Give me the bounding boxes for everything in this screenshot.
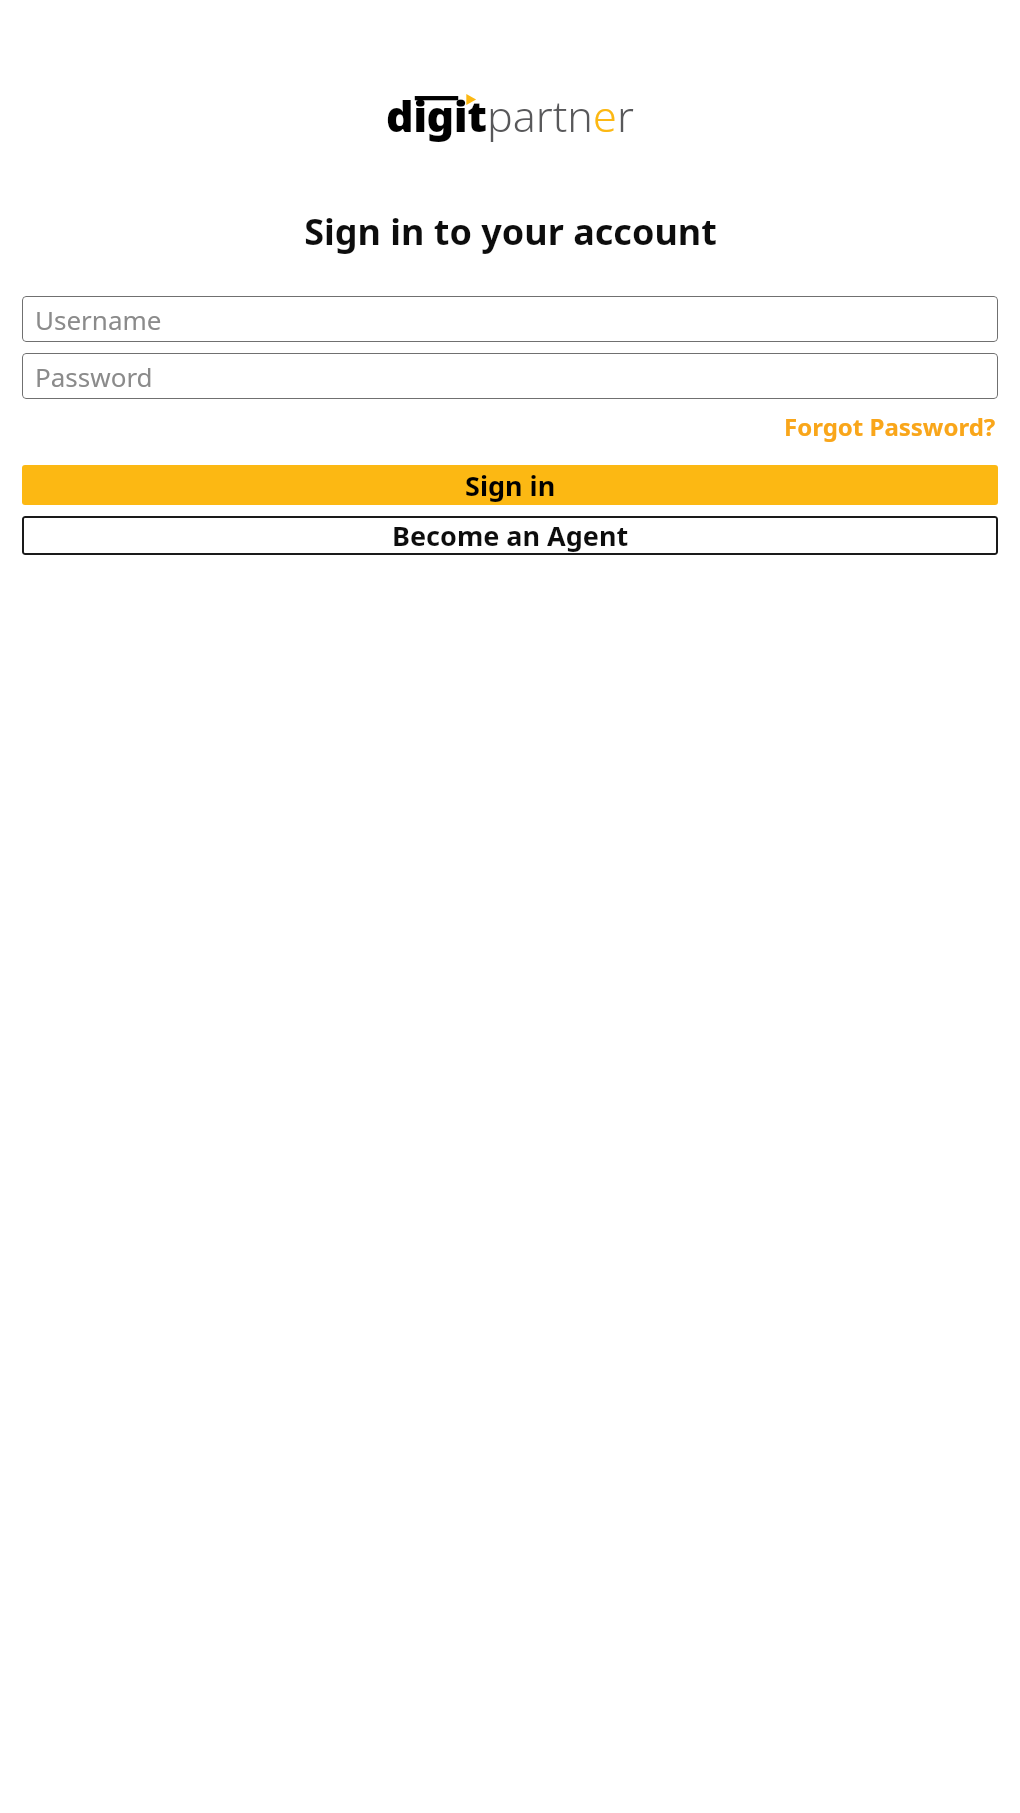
- staticText: digit: [386, 86, 487, 145]
- staticText: partn: [487, 86, 593, 145]
- staticText: Forgot Password?: [784, 410, 996, 443]
- staticText: Password: [35, 359, 153, 394]
- staticText: e: [593, 86, 617, 145]
- staticText: Become an Agent: [392, 517, 629, 554]
- button[interactable]: Forgot Password?: [782, 407, 998, 446]
- button[interactable]: Sign in: [22, 465, 998, 505]
- button[interactable]: Become an Agent: [22, 516, 998, 555]
- staticText: Sign in: [465, 467, 556, 504]
- button[interactable]: Password: [22, 353, 998, 399]
- staticText: Sign in to your account: [304, 207, 717, 256]
- other: digit partner logo: [386, 86, 634, 145]
- button[interactable]: Username: [22, 296, 998, 342]
- staticText: Username: [35, 302, 162, 337]
- staticText: r: [617, 86, 634, 145]
